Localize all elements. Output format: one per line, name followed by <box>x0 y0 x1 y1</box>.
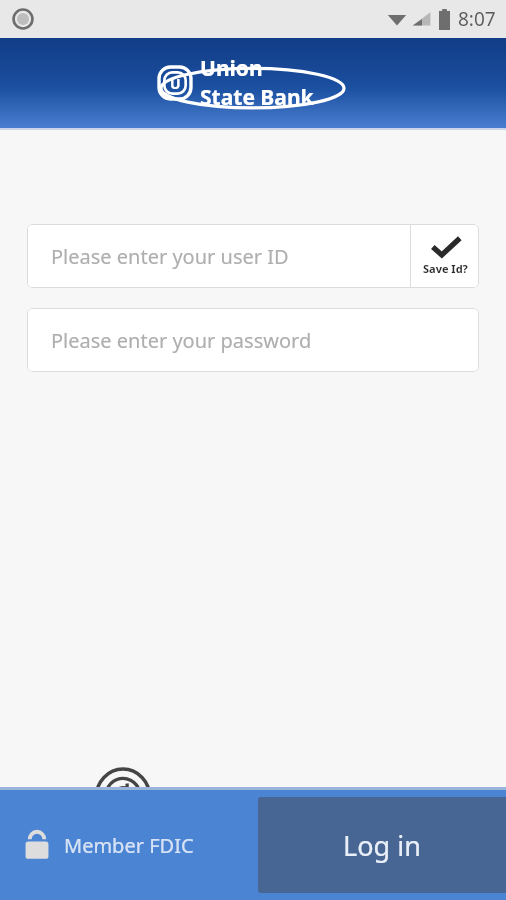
button[interactable]: Member FDIC <box>24 830 194 860</box>
staticText: Save Id? <box>423 261 468 276</box>
button[interactable]: Please enter your user ID <box>27 224 410 288</box>
staticText: Member FDIC <box>64 832 194 859</box>
staticText: Please enter your password <box>51 327 312 354</box>
staticText: 8:07 <box>458 6 496 32</box>
staticText: Log in with fingerprint <box>172 783 420 813</box>
staticText: State Bank <box>200 83 314 112</box>
button[interactable]: Log in <box>258 797 506 893</box>
button[interactable]: Log in with fingerprint <box>0 761 506 835</box>
staticText: Please enter your user ID <box>51 243 289 270</box>
button[interactable]: Save Id <box>411 224 479 288</box>
staticText: U <box>170 74 181 93</box>
staticText: Log in <box>343 827 421 864</box>
button[interactable]: Please enter your password <box>27 308 479 372</box>
staticText: Union <box>200 54 263 83</box>
